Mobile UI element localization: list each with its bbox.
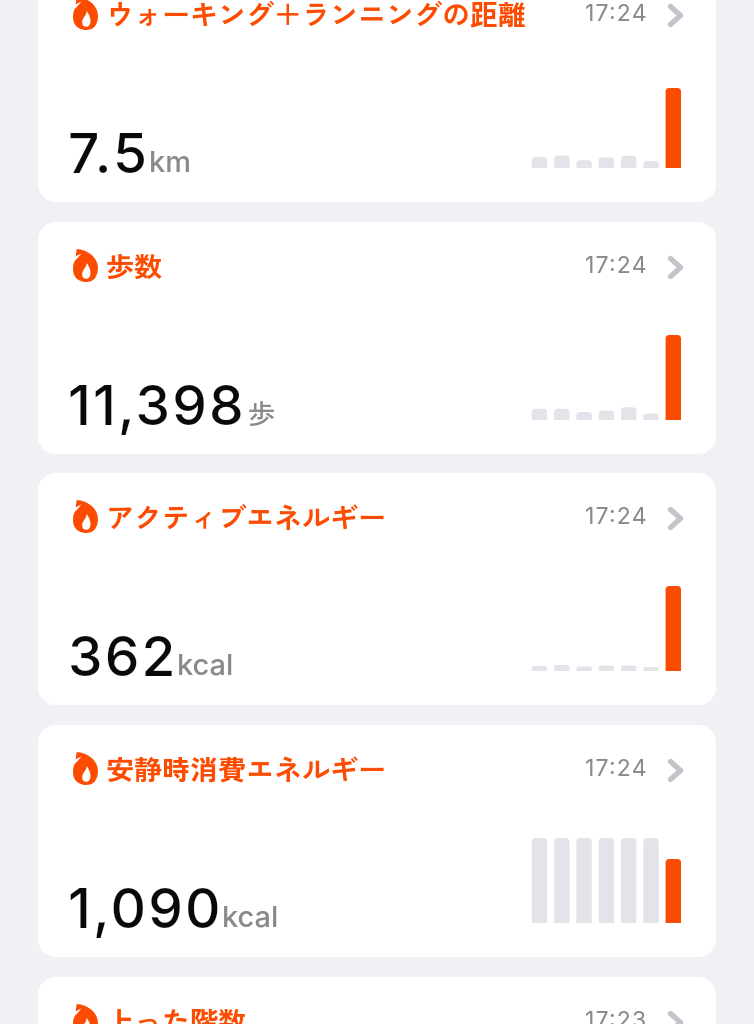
staticText: 17:24 bbox=[585, 251, 648, 279]
button[interactable]: 安静時消費エネルギー bbox=[38, 725, 716, 957]
staticText: アクティブエネルギー bbox=[106, 496, 387, 537]
staticText: 7.5 bbox=[68, 120, 150, 187]
other: 詳細を表示 bbox=[668, 507, 683, 530]
staticText: km bbox=[149, 144, 191, 179]
staticText: ウォーキング＋ランニングの距離 bbox=[106, 0, 527, 34]
staticText: 17:24 bbox=[585, 502, 648, 530]
staticText: 歩 bbox=[248, 393, 275, 432]
other: 詳細を表示 bbox=[668, 759, 683, 782]
staticText: 11,398 bbox=[68, 372, 246, 439]
staticText: 17:24 bbox=[585, 0, 648, 27]
button[interactable]: ウォーキング＋ランニングの距離 bbox=[38, 0, 716, 202]
staticText: 17:23 bbox=[585, 1006, 648, 1024]
staticText: 17:24 bbox=[585, 754, 648, 782]
staticText: 上った階数 bbox=[106, 1000, 247, 1024]
staticText: 362 bbox=[68, 623, 178, 690]
staticText: 1,090 bbox=[68, 875, 223, 942]
other: 詳細を表示 bbox=[668, 4, 683, 27]
staticText: kcal bbox=[177, 647, 234, 682]
staticText: 安静時消費エネルギー bbox=[106, 748, 387, 789]
staticText: 歩数 bbox=[106, 245, 163, 286]
other: 詳細を表示 bbox=[668, 256, 683, 279]
button[interactable]: 上った階数 bbox=[38, 977, 716, 1024]
staticText: kcal bbox=[222, 899, 279, 934]
other: 詳細を表示 bbox=[668, 1011, 683, 1024]
button[interactable]: 歩数 bbox=[38, 222, 716, 454]
button[interactable]: アクティブエネルギー bbox=[38, 473, 716, 705]
